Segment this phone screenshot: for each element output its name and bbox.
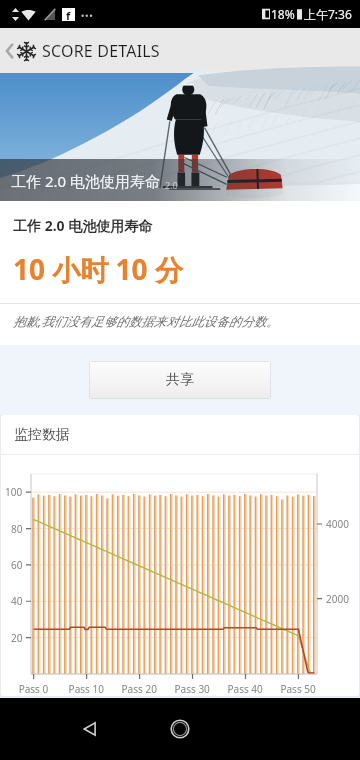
staticText: 上午7:36 xyxy=(304,6,352,22)
button[interactable]: 共享 xyxy=(89,361,271,399)
button[interactable]: Back xyxy=(67,706,113,752)
button[interactable]: Home xyxy=(157,706,203,752)
other: Back xyxy=(4,43,14,59)
staticText: 共享 xyxy=(166,371,194,389)
staticText: 10 小时 10 分 xyxy=(13,250,183,288)
button[interactable]: Back xyxy=(0,28,360,73)
staticText: SCORE DETAILS xyxy=(42,40,160,62)
staticText: 2.0 xyxy=(165,179,178,191)
staticText: 工作 2.0 电池使用寿命 xyxy=(11,171,160,191)
staticText: 监控数据 xyxy=(14,426,70,444)
staticText: 18% xyxy=(271,6,295,22)
staticText: f xyxy=(66,8,71,21)
staticText: 工作 2.0 电池使用寿命 xyxy=(13,216,153,235)
staticText: 抱歉,我们没有足够的数据来对比此设备的分数。 xyxy=(13,313,279,330)
